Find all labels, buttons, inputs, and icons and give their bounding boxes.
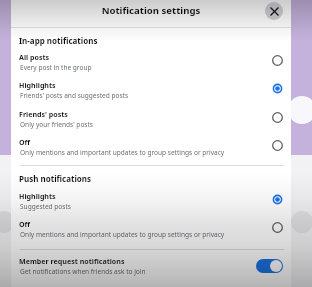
button[interactable]: Highlights [11, 80, 291, 100]
staticText: Only your friends' posts [20, 120, 93, 129]
staticText: Highlights [19, 191, 56, 201]
staticText: Only mentions and important updates to g… [20, 230, 225, 239]
staticText: Notification settings [11, 4, 291, 17]
staticText: Off [19, 219, 31, 229]
button[interactable]: Close [265, 2, 283, 20]
staticText: All posts [19, 52, 50, 62]
button[interactable]: All posts [11, 52, 291, 72]
staticText: Every post in the group [20, 63, 92, 72]
staticText: Only mentions and important updates to g… [20, 148, 225, 157]
button[interactable]: Highlights [11, 191, 291, 211]
staticText: Suggested posts [20, 202, 71, 211]
staticText: Push notifications [19, 173, 92, 184]
staticText: Friends' posts and suggested posts [20, 91, 129, 100]
staticText: Friends' posts [19, 109, 68, 119]
staticText: Get notifications when friends ask to jo… [20, 267, 146, 276]
button[interactable]: Member request notifications [11, 256, 291, 276]
button[interactable]: Friends' posts [11, 109, 291, 129]
staticText: Highlights [19, 80, 56, 90]
staticText: In-app notifications [19, 35, 98, 46]
button[interactable]: Off [11, 219, 291, 239]
staticText: Off [19, 137, 31, 147]
staticText: Member request notifications [19, 256, 125, 266]
button[interactable]: Off [11, 137, 291, 157]
